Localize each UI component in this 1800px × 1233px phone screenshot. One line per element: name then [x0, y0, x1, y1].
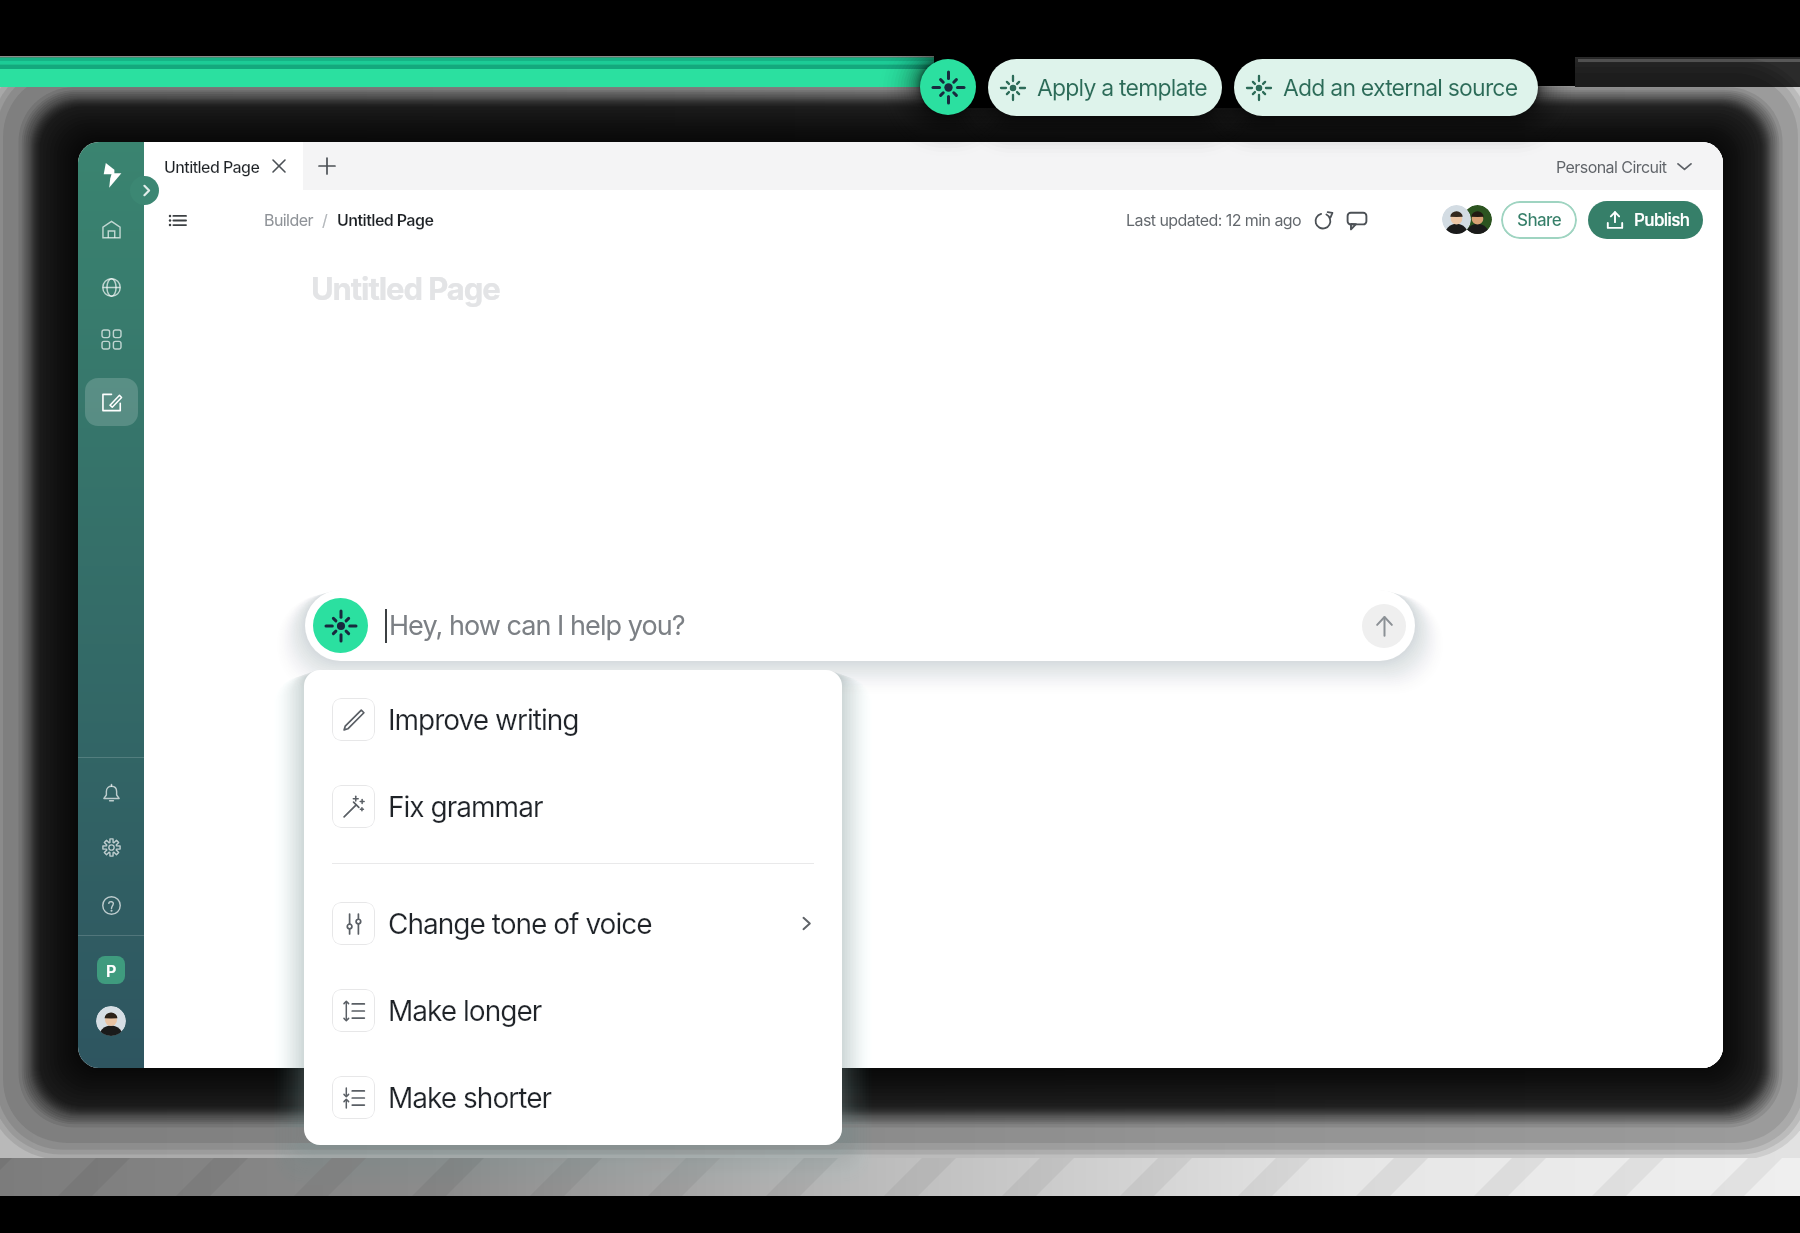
button[interactable]: Collaborator 1 — [1442, 205, 1471, 234]
button[interactable]: AI assistant — [920, 59, 976, 115]
button[interactable]: Expand sidebar — [130, 176, 159, 205]
button[interactable]: Help — [93, 887, 129, 923]
button[interactable]: Account — [96, 1006, 126, 1036]
button[interactable]: Improve writing — [304, 676, 842, 763]
staticText: Share — [1517, 210, 1562, 231]
button[interactable]: Builder — [85, 378, 138, 426]
button[interactable]: Workspace P — [97, 956, 125, 984]
button[interactable]: Apply a template — [988, 59, 1222, 116]
staticText: / — [322, 210, 328, 229]
staticText: Untitled Page — [164, 157, 260, 176]
button[interactable]: Fix grammar — [304, 763, 842, 850]
button[interactable]: Publish — [1588, 201, 1703, 239]
staticText: P — [106, 961, 116, 980]
staticText: Change tone of voice — [388, 907, 652, 941]
button[interactable]: Refresh — [1308, 205, 1338, 235]
button[interactable]: Make shorter — [304, 1054, 842, 1141]
button[interactable]: Share — [1501, 201, 1577, 239]
staticText: Last updated: 12 min ago — [1126, 210, 1302, 229]
button[interactable]: New tab — [303, 142, 350, 190]
button[interactable]: Collaborator 2 — [1463, 205, 1492, 234]
staticText: Add an external source — [1283, 74, 1518, 102]
staticText: Builder — [264, 210, 313, 229]
button[interactable]: Notifications — [93, 775, 129, 811]
staticText: Untitled Page — [337, 210, 434, 229]
staticText: Publish — [1634, 210, 1690, 231]
button[interactable]: Sites — [93, 269, 129, 305]
button[interactable]: Change tone of voice — [304, 880, 842, 967]
button[interactable]: Comments — [1342, 205, 1372, 235]
button[interactable]: Apps — [93, 321, 129, 357]
staticText: Personal Circuit — [1556, 157, 1667, 176]
button[interactable]: Personal Circuit — [1540, 142, 1707, 190]
button[interactable]: Home — [93, 211, 129, 247]
button[interactable]: Hey, how can I help you? — [305, 590, 1415, 661]
staticText: Improve writing — [388, 703, 579, 737]
button[interactable]: Add an external source — [1234, 59, 1538, 116]
staticText: Hey, how can I help you? — [389, 609, 685, 642]
staticText: Untitled Page — [311, 270, 500, 308]
button[interactable]: Outline — [160, 203, 194, 237]
staticText: Make longer — [388, 994, 542, 1028]
button[interactable]: Send — [1362, 604, 1406, 648]
staticText: Fix grammar — [388, 790, 543, 824]
staticText: Apply a template — [1037, 74, 1207, 102]
button[interactable]: Make longer — [304, 967, 842, 1054]
button[interactable]: Settings — [93, 829, 129, 865]
staticText: Make shorter — [388, 1081, 552, 1115]
button[interactable]: Untitled Page — [144, 142, 303, 190]
